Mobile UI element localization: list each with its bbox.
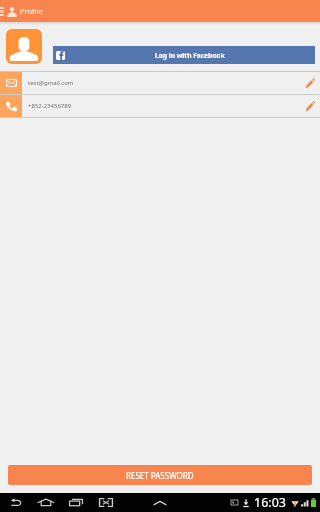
button[interactable]: Recent apps: [61, 493, 91, 512]
button[interactable]: Back: [1, 493, 31, 512]
staticText: +852-23456789: [28, 102, 72, 110]
staticText: 16:03: [254, 494, 286, 511]
button[interactable]: RESET PASSWORD: [8, 465, 312, 485]
button[interactable]: Profile photo: [6, 29, 42, 64]
staticText: Profile: [20, 6, 43, 16]
staticText: RESET PASSWORD: [126, 470, 194, 481]
staticText: test@gmail.com: [28, 79, 74, 87]
button[interactable]: +852-23456789: [0, 95, 320, 117]
button[interactable]: Screenshot: [91, 493, 121, 512]
staticText: Log in with Facebook: [155, 51, 225, 60]
button[interactable]: test@gmail.com: [0, 72, 320, 94]
button[interactable]: Expand: [148, 493, 172, 512]
button[interactable]: Home: [31, 493, 61, 512]
button[interactable]: Menu: [0, 0, 5, 22]
button[interactable]: Log in with Facebook: [53, 46, 315, 64]
button[interactable]: Edit: [301, 72, 320, 94]
button[interactable]: Edit: [301, 95, 320, 117]
